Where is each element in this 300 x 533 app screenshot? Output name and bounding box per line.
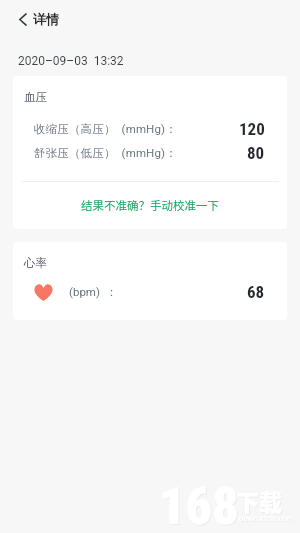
staticText: 168 <box>159 476 239 533</box>
staticText: down.it168.com <box>240 515 294 524</box>
staticText: 2020–09–03 13:32 <box>18 54 124 68</box>
staticText: 结果不准确？手动校准一下 <box>81 197 219 214</box>
staticText: 120 <box>239 119 265 135</box>
staticText: 下载 <box>237 485 283 518</box>
staticText: 收缩压（高压） (mmHg)： <box>34 122 177 136</box>
staticText: 80 <box>247 143 265 159</box>
staticText: 68 <box>247 282 265 302</box>
staticText: 168 <box>160 477 240 533</box>
staticText: (bpm) ： <box>69 285 118 299</box>
staticText: 血压 <box>24 90 47 104</box>
staticText: 舒张压（低压） (mmHg)： <box>34 146 177 160</box>
staticText: 详情 <box>33 11 59 27</box>
button[interactable]: 结果不准确？手动校准一下 <box>13 182 287 229</box>
staticText: down.it168.com <box>239 514 293 523</box>
button[interactable]: Back <box>14 8 65 30</box>
staticText: 下载 <box>236 484 282 517</box>
staticText: 心率 <box>24 256 47 270</box>
